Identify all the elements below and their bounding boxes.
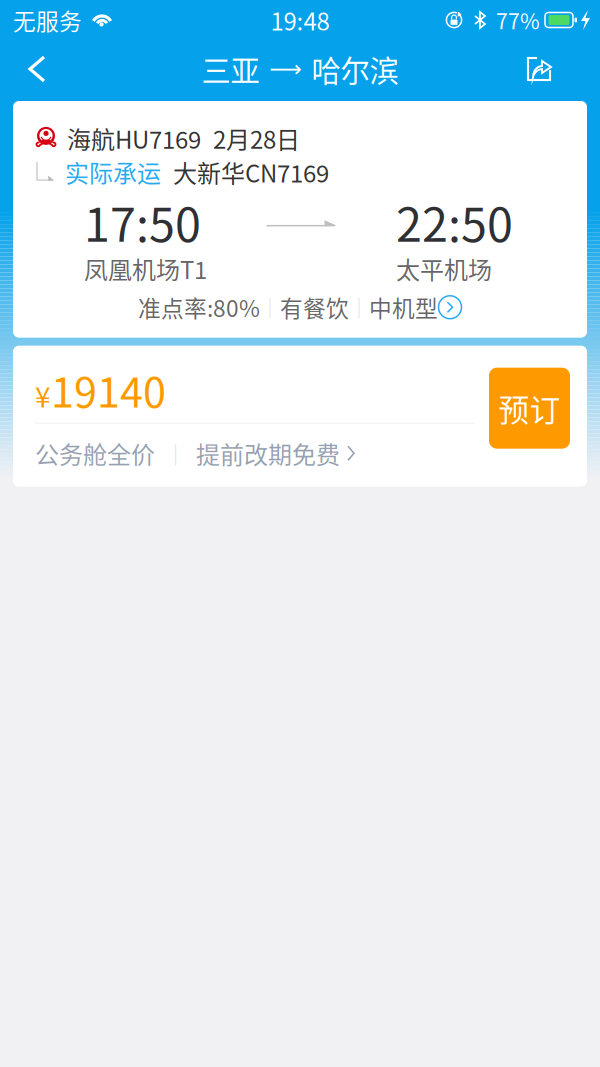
staticText: 预订 — [498, 386, 560, 430]
staticText: ｜ — [260, 293, 280, 322]
staticText: 哈尔滨 — [311, 48, 398, 90]
staticText: 凤凰机场T1 — [84, 251, 207, 286]
staticText: 海航HU7169 — [67, 121, 201, 156]
staticText: 中机型 — [369, 291, 438, 324]
staticText: 22:50 — [396, 187, 513, 255]
button[interactable]: 预订 — [489, 368, 570, 449]
staticText: 实际承运 — [65, 155, 161, 190]
staticText: ⟶ — [269, 56, 301, 82]
staticText: 三亚 — [201, 48, 259, 90]
button[interactable]: 返回 — [10, 47, 64, 91]
button[interactable]: 分享 — [508, 48, 590, 90]
staticText: 公务舱全价 — [35, 436, 155, 471]
staticText: 无服务 — [13, 4, 82, 36]
staticText: 准点率:80% — [138, 291, 260, 324]
staticText: ｜ — [349, 293, 369, 322]
staticText: 17:50 — [84, 187, 201, 255]
staticText: 19140 — [51, 360, 166, 420]
staticText: 大新华CN7169 — [173, 155, 329, 190]
staticText: ¥ — [35, 375, 51, 416]
staticText: 19:48 — [270, 3, 329, 37]
staticText: 太平机场 — [396, 251, 492, 286]
staticText: 2月28日 — [213, 121, 300, 156]
staticText: 提前改期免费 — [196, 436, 340, 471]
staticText: 77% — [496, 5, 540, 35]
staticText: 有餐饮 — [280, 291, 349, 324]
staticText: ｜ — [155, 438, 196, 469]
